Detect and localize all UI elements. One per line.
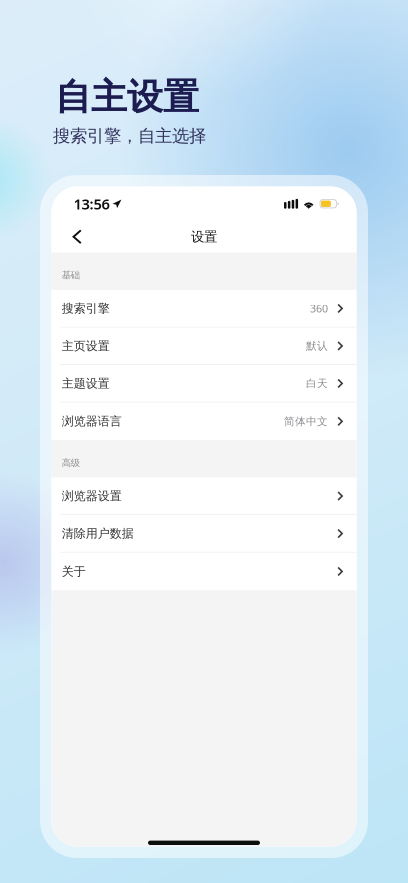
- button[interactable]: 清除用户数据: [51, 515, 356, 553]
- staticText: 13:56: [73, 194, 109, 213]
- staticText: 关于: [62, 564, 86, 579]
- button[interactable]: 浏览器设置: [51, 478, 356, 515]
- staticText: 搜索引擎: [62, 301, 110, 316]
- staticText: 浏览器语言: [62, 414, 122, 429]
- staticText: 360: [310, 301, 328, 316]
- button[interactable]: 主题设置: [51, 365, 356, 403]
- button[interactable]: 返回: [63, 223, 91, 250]
- staticText: 主题设置: [62, 376, 110, 391]
- staticText: 主页设置: [62, 339, 110, 353]
- button[interactable]: 关于: [51, 553, 356, 590]
- staticText: 简体中文: [284, 415, 328, 428]
- staticText: 浏览器设置: [62, 489, 122, 503]
- button[interactable]: 搜索引擎: [51, 290, 356, 328]
- staticText: 搜索引擎，自主选择: [53, 125, 206, 146]
- staticText: 清除用户数据: [62, 526, 134, 541]
- staticText: 自主设置: [55, 75, 199, 119]
- staticText: 设置: [191, 229, 217, 245]
- button[interactable]: 主页设置: [51, 328, 356, 365]
- button[interactable]: 浏览器语言: [51, 403, 356, 440]
- staticText: 基础: [62, 269, 80, 281]
- staticText: 默认: [306, 339, 328, 352]
- staticText: 白天: [306, 377, 328, 390]
- staticText: 高级: [62, 457, 80, 469]
